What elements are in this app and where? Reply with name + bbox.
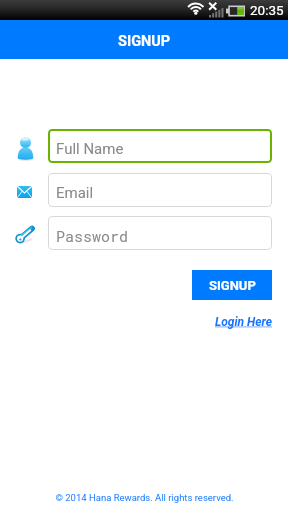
button[interactable]: Password [48, 216, 272, 250]
staticText: SIGNUP [118, 33, 171, 50]
button[interactable]: Email [48, 173, 272, 207]
staticText: © 2014 Hana Rewards. All rights reserved… [55, 492, 234, 503]
staticText: 20:35 [250, 2, 284, 18]
staticText: Email [56, 184, 94, 202]
staticText: Login Here [215, 315, 273, 329]
button[interactable]: Full Name [48, 129, 272, 163]
staticText: Full Name [56, 140, 124, 158]
staticText: Password [56, 226, 129, 246]
staticText: SIGNUP [209, 278, 256, 293]
button[interactable]: SIGNUP [192, 270, 272, 300]
button[interactable]: Login Here [215, 315, 273, 329]
